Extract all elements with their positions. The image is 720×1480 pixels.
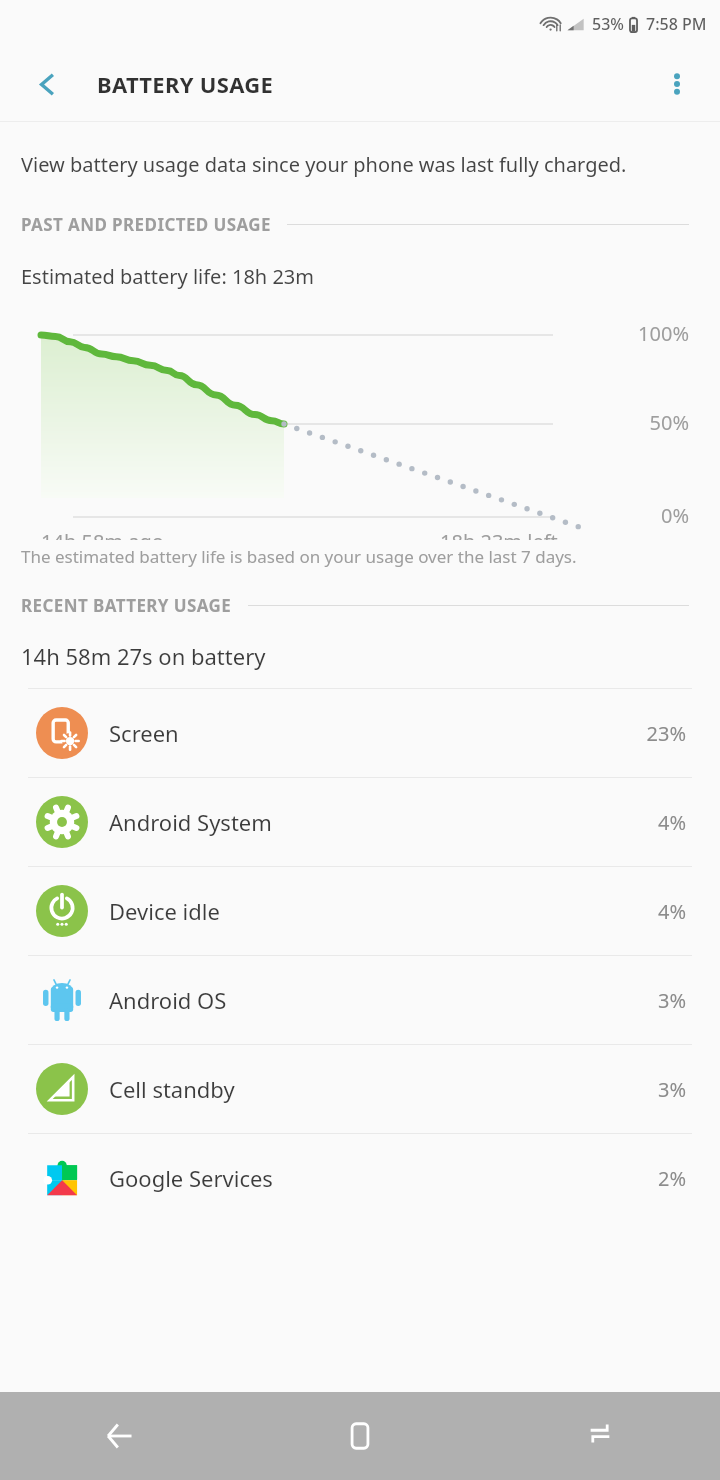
button[interactable]: Screen bbox=[0, 689, 720, 777]
button[interactable]: Recent apps bbox=[480, 1392, 720, 1480]
staticText: 7:58 PM bbox=[646, 13, 707, 35]
staticText: 100% bbox=[638, 320, 689, 347]
staticText: The estimated battery life is based on y… bbox=[21, 545, 577, 568]
staticText: 2% bbox=[657, 1165, 686, 1192]
staticText: 0% bbox=[660, 502, 689, 529]
button[interactable]: Back bbox=[0, 1392, 240, 1480]
staticText: RECENT BATTERY USAGE bbox=[21, 594, 232, 617]
staticText: 50% bbox=[649, 409, 689, 436]
staticText: 23% bbox=[646, 720, 686, 747]
button[interactable]: Cell standby bbox=[0, 1045, 720, 1133]
staticText: Cell standby bbox=[109, 1074, 657, 1104]
staticText: 14h 58m 27s on battery bbox=[21, 641, 266, 671]
staticText: PAST AND PREDICTED USAGE bbox=[21, 213, 271, 236]
staticText: 18h 23m left bbox=[440, 528, 558, 540]
button[interactable]: Device idle bbox=[0, 867, 720, 955]
staticText: Device idle bbox=[109, 896, 657, 926]
button[interactable]: Home bbox=[240, 1392, 480, 1480]
button[interactable]: More options bbox=[651, 58, 703, 110]
staticText: 14h 58m ago bbox=[41, 528, 164, 540]
staticText: Estimated battery life: 18h 23m bbox=[21, 263, 314, 290]
staticText: Google Services bbox=[109, 1163, 657, 1193]
button[interactable]: Google Services bbox=[0, 1134, 720, 1222]
staticText: 4% bbox=[657, 898, 686, 925]
staticText: 3% bbox=[657, 1076, 686, 1103]
staticText: Android OS bbox=[109, 985, 657, 1015]
button[interactable]: Android OS bbox=[0, 956, 720, 1044]
staticText: 3% bbox=[657, 987, 686, 1014]
button[interactable]: Back bbox=[19, 56, 75, 112]
staticText: View battery usage data since your phone… bbox=[21, 151, 627, 178]
staticText: Screen bbox=[109, 718, 646, 748]
staticText: BATTERY USAGE bbox=[97, 69, 274, 99]
staticText: 4% bbox=[657, 809, 686, 836]
button[interactable]: Android System bbox=[0, 778, 720, 866]
staticText: 53% bbox=[592, 13, 624, 35]
staticText: Android System bbox=[109, 807, 657, 837]
